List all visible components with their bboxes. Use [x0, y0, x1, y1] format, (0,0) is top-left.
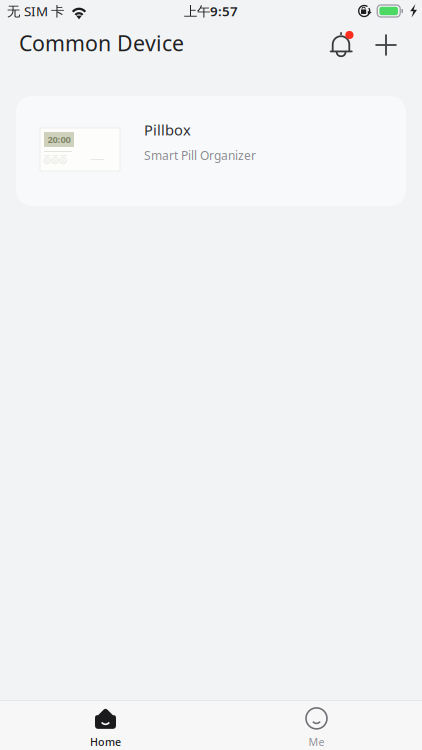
button[interactable]: Me: [211, 701, 422, 750]
staticText: Pillbox: [144, 120, 191, 139]
staticText: Common Device: [19, 29, 184, 57]
staticText: 20:00: [47, 133, 70, 146]
staticText: Smart Pill Organizer: [144, 147, 256, 163]
button[interactable]: Notifications: [320, 24, 364, 68]
staticText: Me: [308, 735, 324, 749]
button[interactable]: Add device: [364, 24, 408, 68]
button[interactable]: 20:00: [16, 96, 406, 206]
staticText: 上午9:57: [184, 2, 238, 20]
staticText: Home: [90, 735, 121, 749]
staticText: 无 SIM 卡: [7, 2, 64, 20]
button[interactable]: Home: [0, 701, 211, 750]
